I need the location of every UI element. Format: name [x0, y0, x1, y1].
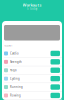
staticText: Running	[10, 85, 23, 89]
staticText: TODAY	[4, 44, 13, 47]
staticText: Rowing	[10, 94, 21, 97]
staticText: Cardio	[10, 52, 19, 55]
button[interactable]: Strength	[2, 58, 62, 66]
staticText: Cycling	[10, 77, 20, 80]
button[interactable]: Running	[2, 83, 62, 91]
staticText: 5 today	[27, 7, 37, 10]
button[interactable]: Rowing	[2, 91, 62, 100]
button[interactable]: Cardio	[2, 49, 62, 58]
button[interactable]: Yoga	[2, 66, 62, 75]
staticText: Workouts	[22, 2, 41, 7]
button[interactable]: Cycling	[2, 75, 62, 83]
staticText: Yoga	[10, 68, 16, 72]
staticText: Strength	[10, 60, 22, 64]
